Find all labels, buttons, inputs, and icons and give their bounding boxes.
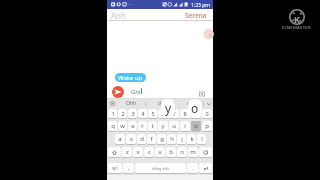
staticText: K: [294, 13, 300, 25]
button[interactable]: j: [177, 134, 186, 144]
button[interactable]: 7: [169, 109, 179, 118]
staticText: v: [158, 148, 162, 156]
staticText: e: [131, 122, 135, 130]
staticText: m: [190, 148, 196, 156]
button[interactable]: z: [122, 147, 132, 157]
button[interactable]: 2: [118, 109, 127, 118]
button[interactable]: x: [133, 147, 143, 157]
button[interactable]: n: [177, 147, 187, 157]
button[interactable]: g: [157, 134, 166, 144]
button[interactable]: ơ: [146, 99, 174, 108]
staticText: c: [148, 148, 151, 156]
button[interactable]: a: [115, 134, 125, 144]
staticText: x: [136, 148, 140, 156]
staticText: j: [181, 135, 183, 143]
staticText: Ohh: [126, 100, 137, 107]
staticText: l: [201, 135, 203, 143]
button[interactable]: Key: [199, 163, 212, 173]
staticText: 1:23 pm: [191, 2, 210, 9]
button[interactable]: y: [158, 121, 168, 131]
button[interactable]: ,: [123, 163, 134, 173]
button[interactable]: 1: [108, 109, 117, 118]
button[interactable]: Attach: [199, 91, 205, 97]
button[interactable]: Key: [108, 147, 121, 157]
staticText: g: [160, 135, 164, 143]
staticText: Anh: [111, 10, 126, 21]
button[interactable]: Wake up: [115, 73, 146, 82]
staticText: p: [205, 122, 209, 130]
button[interactable]: o: [191, 121, 201, 131]
staticText: 9: [194, 110, 198, 117]
button[interactable]: p: [202, 121, 212, 131]
staticText: Serena: [185, 11, 207, 20]
button[interactable]: u: [169, 121, 179, 131]
button[interactable]: d: [137, 134, 146, 144]
button[interactable]: More suggestions: [204, 99, 213, 108]
staticText: KINEMASTER: [282, 25, 311, 31]
staticText: 6: [161, 110, 165, 117]
staticText: u: [172, 122, 176, 130]
button[interactable]: Settings: [107, 99, 117, 108]
button[interactable]: t: [148, 121, 157, 131]
button[interactable]: 6: [158, 109, 168, 118]
staticText: f: [150, 135, 153, 143]
button[interactable]: 9: [191, 109, 201, 118]
staticText: t: [151, 122, 154, 130]
button[interactable]: .: [187, 163, 198, 173]
button[interactable]: Key: [199, 147, 212, 157]
staticText: q: [111, 122, 115, 130]
button[interactable]: s: [126, 134, 136, 144]
button[interactable]: 0: [202, 109, 212, 118]
staticText: z: [126, 148, 129, 156]
staticText: n: [180, 148, 184, 156]
staticText: k: [190, 135, 194, 143]
staticText: w: [120, 122, 125, 130]
staticText: 7: [172, 110, 176, 117]
button[interactable]: b: [166, 147, 176, 157]
staticText: ơi: [187, 100, 192, 107]
button[interactable]: 4: [138, 109, 147, 118]
staticText: Wake up: [118, 74, 143, 82]
staticText: o: [191, 100, 199, 116]
staticText: o: [194, 122, 198, 130]
staticText: 5: [151, 110, 155, 117]
button[interactable]: !#1: [108, 163, 122, 173]
button[interactable]: l: [197, 134, 206, 144]
button[interactable]: f: [147, 134, 156, 144]
staticText: tiếng việt: [152, 166, 169, 171]
staticText: b: [169, 148, 173, 156]
staticText: s: [130, 135, 133, 143]
button[interactable]: i: [180, 121, 190, 131]
staticText: 2: [121, 110, 125, 117]
button[interactable]: m: [188, 147, 198, 157]
staticText: 8: [183, 110, 187, 117]
button[interactable]: 8: [180, 109, 190, 118]
staticText: r: [141, 122, 144, 130]
staticText: a: [118, 135, 122, 143]
staticText: Ghi: [131, 88, 141, 96]
button[interactable]: v: [155, 147, 165, 157]
button[interactable]: c: [144, 147, 154, 157]
button[interactable]: 5: [148, 109, 157, 118]
staticText: 3: [131, 110, 135, 117]
button[interactable]: h: [167, 134, 176, 144]
staticText: ơ: [158, 100, 162, 107]
button[interactable]: q: [108, 121, 117, 131]
staticText: 0: [205, 110, 209, 117]
staticText: y: [165, 100, 172, 116]
button[interactable]: e: [128, 121, 137, 131]
button[interactable]: 3: [128, 109, 137, 118]
staticText: 1: [111, 110, 115, 117]
button[interactable]: tiếng việt: [135, 163, 186, 173]
button[interactable]: w: [118, 121, 127, 131]
button[interactable]: Send voice message: [112, 86, 124, 98]
staticText: h: [170, 135, 174, 143]
staticText: 4: [141, 110, 145, 117]
staticText: i: [184, 122, 186, 130]
button[interactable]: ơi: [175, 99, 203, 108]
staticText: !#1: [112, 166, 118, 171]
button[interactable]: Ohh: [117, 99, 145, 108]
button[interactable]: k: [187, 134, 196, 144]
staticText: y: [161, 122, 165, 130]
button[interactable]: r: [138, 121, 147, 131]
